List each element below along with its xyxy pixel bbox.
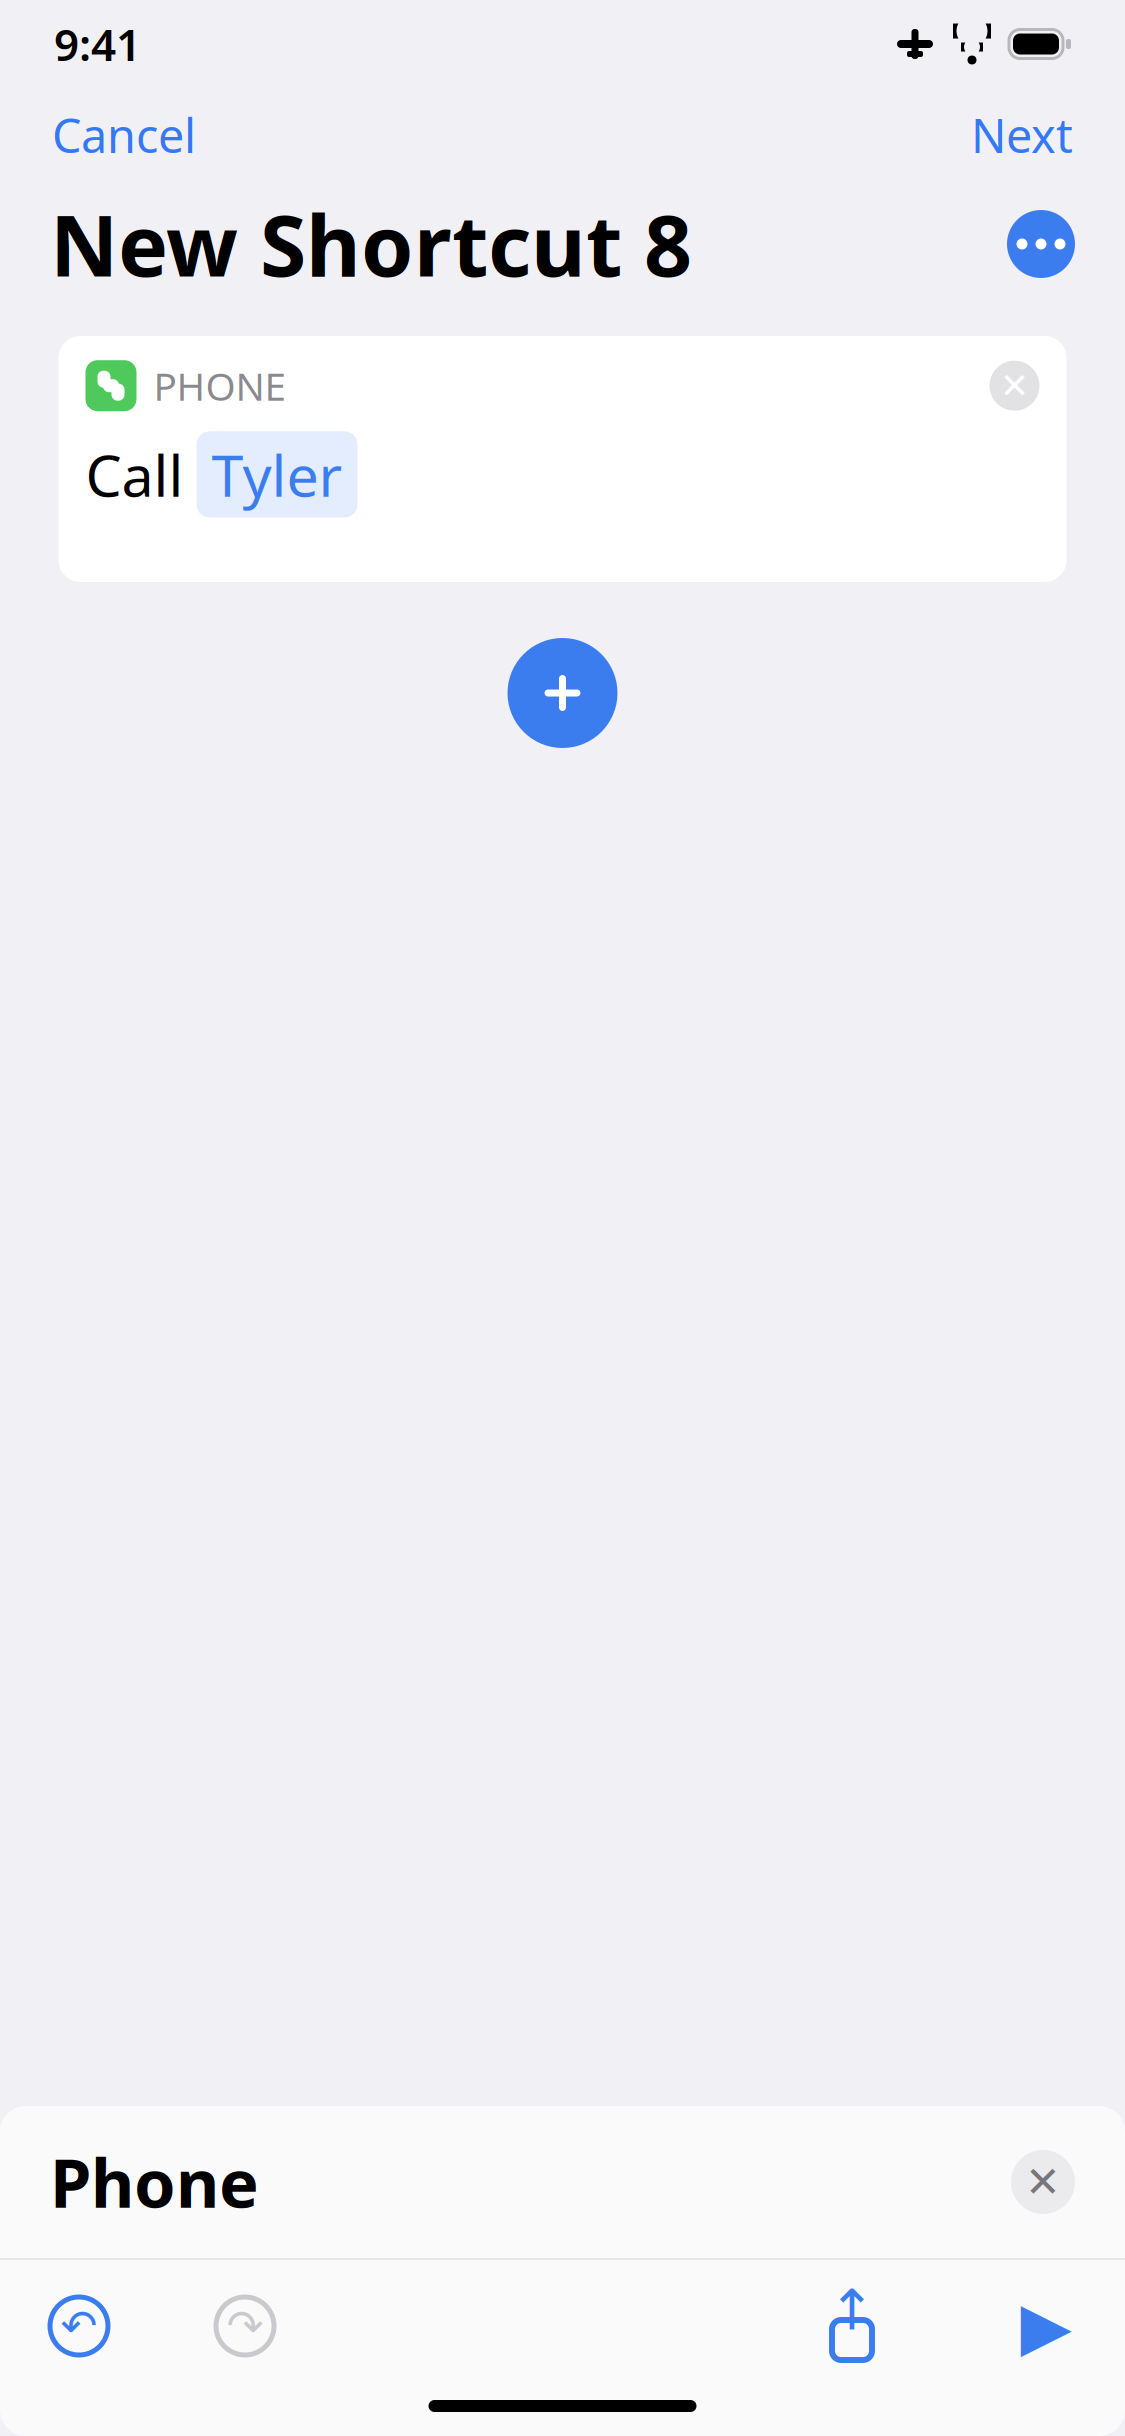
button[interactable]: Add action [507, 638, 617, 748]
staticText: Cancel [52, 104, 196, 166]
button[interactable]: Redo [206, 2287, 284, 2365]
staticText: Call [85, 436, 183, 512]
button[interactable]: Cancel [46, 94, 202, 176]
staticText: ↷ [226, 2301, 263, 2351]
staticText: 9:41 [54, 15, 141, 73]
staticText: Next [971, 104, 1073, 166]
staticText: ✕ [1025, 2158, 1061, 2206]
button[interactable]: Undo [40, 2287, 118, 2365]
staticText: Tyler [211, 436, 342, 512]
button[interactable]: Share [815, 2283, 889, 2369]
staticText: ↶ [60, 2301, 97, 2351]
staticText: ✕ [1000, 366, 1029, 405]
staticText: ▶ [1020, 2288, 1071, 2364]
button[interactable]: Clear [1011, 2150, 1075, 2214]
button[interactable]: More options [1007, 210, 1075, 278]
button[interactable]: Next [965, 94, 1079, 176]
staticText: PHONE [153, 360, 285, 411]
staticText: New Shortcut 8 [50, 188, 692, 300]
button[interactable]: PHONE [58, 336, 1066, 582]
staticText: ↑ [828, 2278, 875, 2342]
button[interactable]: Remove action [989, 361, 1039, 411]
staticText: Phone [50, 2138, 259, 2226]
button[interactable]: Run shortcut [1007, 2287, 1085, 2365]
